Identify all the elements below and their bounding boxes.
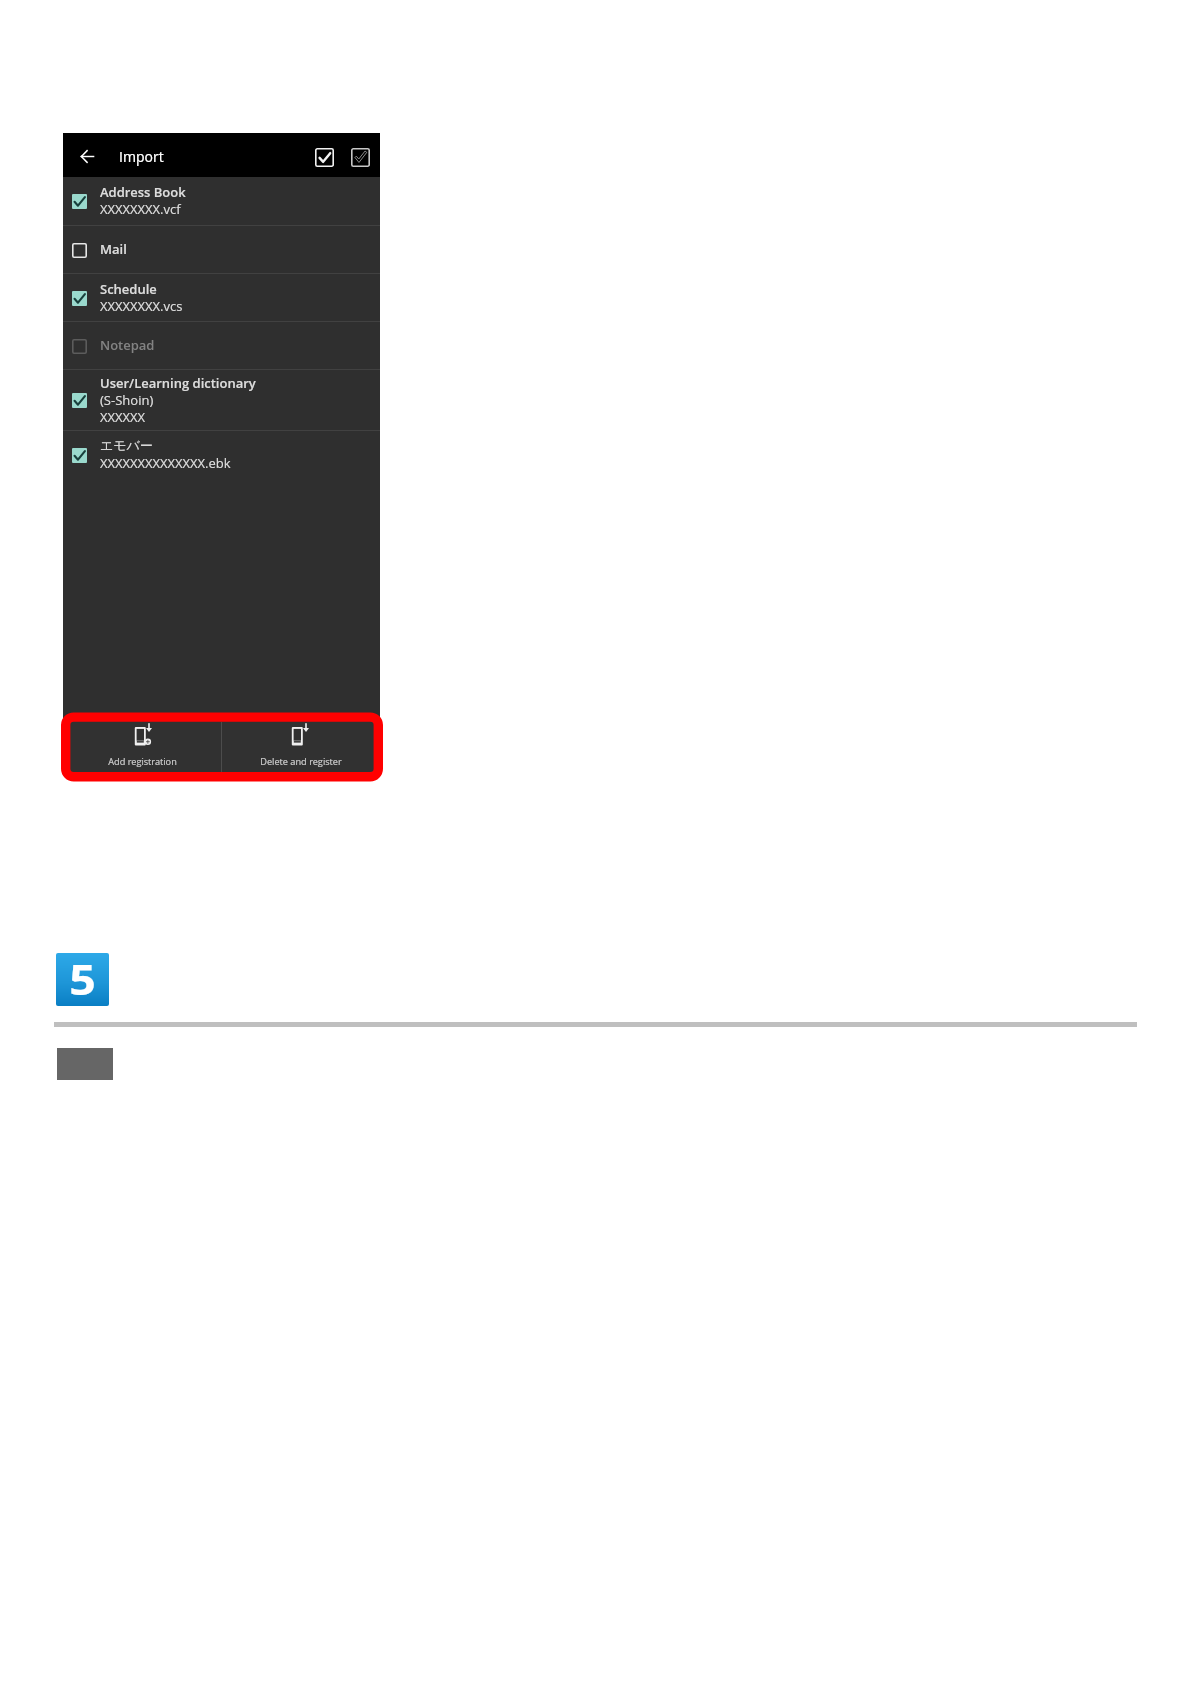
button[interactable]: Deselect all: [342, 133, 378, 177]
button[interactable]: Select all: [306, 133, 342, 177]
staticText: XXXXXXXX.vcs: [100, 297, 183, 314]
staticText: Mail: [100, 240, 127, 257]
staticText: XXXXXXXX.vcf: [100, 200, 181, 217]
staticText: XXXXXXXXXXXXXX.ebk: [100, 454, 231, 471]
staticText: エモバー: [100, 437, 153, 454]
button[interactable]: Delete and register: [222, 722, 380, 772]
staticText: XXXXXX: [100, 408, 146, 425]
button[interactable]: User/Learning dictionary: [63, 370, 380, 430]
button[interactable]: エモバー: [63, 431, 380, 479]
staticText: Import: [119, 147, 164, 166]
staticText: 5: [69, 953, 96, 1005]
button[interactable]: Add registration: [63, 722, 221, 772]
staticText: Add registration: [108, 755, 177, 768]
staticText: Schedule: [100, 280, 157, 297]
button[interactable]: Schedule: [63, 274, 380, 321]
button[interactable]: Mail: [63, 226, 380, 273]
staticText: Delete and register: [260, 755, 342, 768]
button[interactable]: Address Book: [63, 177, 380, 225]
staticText: Address Book: [100, 183, 186, 200]
staticText: User/Learning dictionary: [100, 374, 256, 391]
button[interactable]: Notepad: [63, 322, 380, 369]
button[interactable]: Back: [65, 133, 109, 177]
staticText: (S-Shoin): [100, 391, 154, 408]
staticText: Notepad: [100, 336, 155, 353]
